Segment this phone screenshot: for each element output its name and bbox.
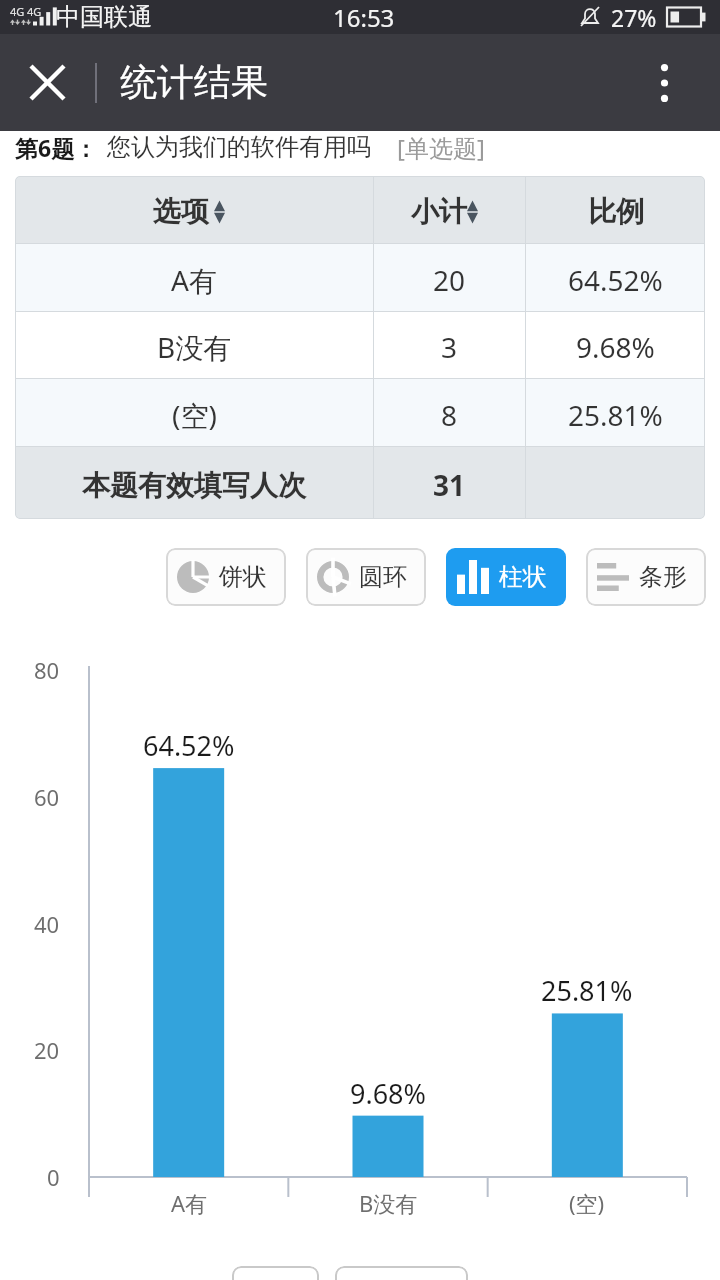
staticText: 80	[34, 655, 60, 685]
button[interactable]: 选项	[15, 176, 373, 243]
staticText: 20	[34, 1035, 60, 1065]
button[interactable]: Previous question	[232, 1266, 319, 1280]
button[interactable]: 条形	[586, 548, 706, 606]
staticText: 本题有效填写人次	[82, 468, 306, 503]
button[interactable]: 饼状	[166, 548, 286, 606]
staticText: (空)	[172, 396, 217, 434]
staticText: 9.68%	[350, 1075, 427, 1111]
staticText: 20	[433, 261, 466, 299]
other: Silent mode	[577, 4, 603, 30]
staticText: 0	[47, 1162, 60, 1192]
staticText: B没有	[157, 328, 232, 366]
staticText: 第6题：	[15, 132, 98, 163]
staticText: 16:53	[333, 1, 395, 34]
staticText: 条形	[639, 562, 687, 592]
button[interactable]: Close	[0, 34, 95, 131]
staticText: 选项	[153, 194, 209, 229]
staticText: 柱状	[499, 562, 547, 592]
staticText: (空)	[569, 1188, 605, 1218]
staticText: B没有	[359, 1188, 418, 1218]
button[interactable]: 柱状	[446, 548, 566, 606]
staticText: 统计结果	[120, 59, 268, 106]
staticText: 60	[34, 782, 60, 812]
staticText: 27%	[611, 2, 657, 33]
staticText: 31	[433, 466, 466, 504]
staticText: 64.52%	[143, 727, 235, 763]
staticText: A有	[171, 261, 217, 299]
staticText: 饼状	[219, 562, 267, 592]
button[interactable]: 圆环	[306, 548, 426, 606]
staticText: 您认为我们的软件有用吗	[107, 132, 371, 162]
staticText: 小计	[411, 194, 467, 229]
staticText: 8	[441, 396, 458, 434]
staticText: 25.81%	[541, 972, 633, 1008]
staticText: 40	[34, 909, 60, 939]
button[interactable]: More options	[608, 34, 720, 131]
staticText: 比例	[588, 194, 644, 229]
staticText: 4G	[27, 4, 42, 19]
staticText: 4G	[10, 4, 25, 19]
button[interactable]: Next question	[335, 1266, 468, 1280]
button[interactable]: 小计	[374, 176, 525, 243]
staticText: 中国联通	[56, 2, 152, 32]
staticText: 3	[441, 328, 458, 366]
staticText: [单选题]	[397, 131, 485, 163]
staticText: 圆环	[359, 562, 407, 592]
staticText: A有	[171, 1188, 208, 1218]
staticText: 64.52%	[568, 261, 663, 299]
staticText: 25.81%	[568, 396, 663, 434]
staticText: 9.68%	[576, 328, 655, 366]
